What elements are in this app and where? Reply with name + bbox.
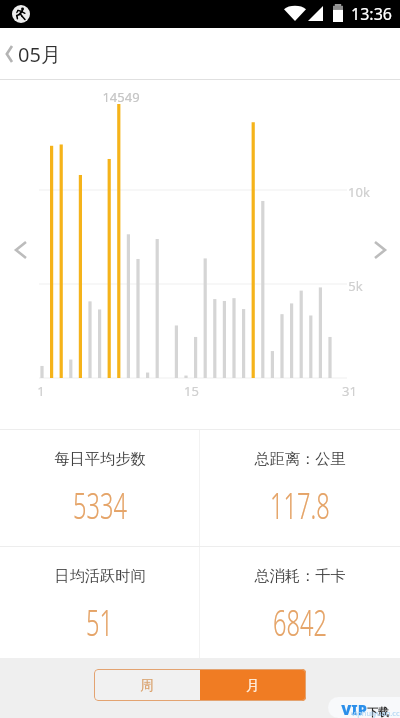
staticText: 5k [348, 277, 363, 295]
button[interactable]: 总距离：公里 [200, 430, 400, 546]
staticText: 月 [246, 677, 260, 694]
staticText: 1 [37, 382, 45, 400]
staticText: 周 [140, 677, 154, 694]
staticText: 总距离：公里 [254, 449, 346, 468]
staticText: 日均活跃时间 [54, 566, 146, 585]
other: Pedometer [12, 5, 30, 23]
staticText: 15 [184, 382, 199, 400]
button[interactable]: Previous month [6, 235, 36, 265]
staticText: 每日平均步数 [54, 449, 146, 468]
staticText: viphuiyuan.cc [351, 708, 400, 718]
button[interactable]: 总消耗：千卡 [200, 547, 400, 663]
staticText: 31 [342, 382, 357, 400]
button[interactable]: 周 [94, 669, 200, 701]
button[interactable]: 05月 [0, 28, 400, 80]
staticText: 总消耗：千卡 [254, 566, 346, 585]
staticText: 下载 [367, 705, 389, 718]
button[interactable]: 日均活跃时间 [0, 547, 200, 663]
button[interactable]: 每日平均步数 [0, 430, 200, 546]
staticText: 10k [348, 183, 370, 201]
button[interactable]: 月 [200, 669, 306, 701]
button[interactable]: Next month [365, 235, 395, 265]
staticText: 13:36 [351, 3, 392, 25]
staticText: 14549 [102, 88, 140, 106]
staticText: VIP [341, 699, 367, 718]
staticText: 05月 [18, 41, 61, 68]
